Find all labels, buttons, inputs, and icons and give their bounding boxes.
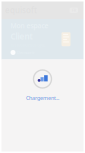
staticText: Chargement... (26, 94, 59, 102)
button[interactable]: Decouvrir (10, 50, 35, 55)
